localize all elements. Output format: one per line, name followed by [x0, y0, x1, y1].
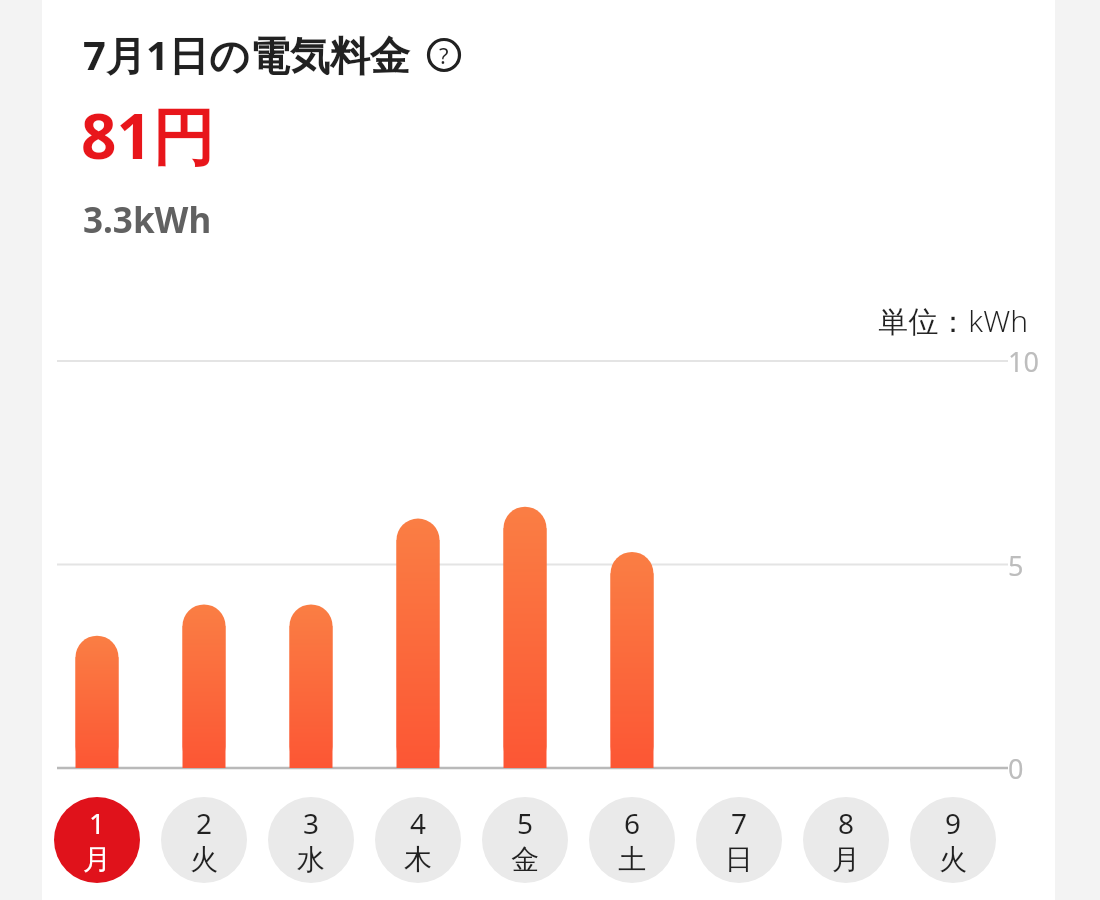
staticText: 10	[1008, 343, 1039, 380]
staticText: 土	[618, 842, 646, 877]
button[interactable]: ヘルプ	[424, 35, 464, 75]
staticText: 0	[1008, 750, 1024, 787]
button[interactable]: 3	[268, 797, 354, 883]
staticText: 単位：kWh	[728, 300, 1028, 341]
staticText: 3.3kWh	[83, 196, 212, 244]
staticText: 5	[1008, 547, 1024, 584]
staticText: 9	[945, 804, 962, 842]
button[interactable]: 5	[482, 797, 568, 883]
staticText: 金	[511, 842, 539, 877]
button[interactable]: 2	[161, 797, 247, 883]
staticText: 火	[190, 842, 218, 877]
staticText: 7月1日の電気料金	[83, 27, 410, 82]
staticText: 日	[725, 842, 753, 877]
staticText: 81円	[81, 93, 214, 178]
staticText: 月	[83, 842, 111, 877]
button[interactable]: 9	[910, 797, 996, 883]
button[interactable]: 8	[803, 797, 889, 883]
button[interactable]: 6	[589, 797, 675, 883]
staticText: 4	[410, 804, 427, 842]
staticText: 6	[624, 804, 641, 842]
staticText: 1	[89, 804, 106, 842]
staticText: 月	[832, 842, 860, 877]
button[interactable]: 1	[54, 797, 140, 883]
staticText: 水	[297, 842, 325, 877]
staticText: 7	[731, 804, 748, 842]
button[interactable]: 4	[375, 797, 461, 883]
staticText: 3	[303, 804, 320, 842]
staticText: 2	[196, 804, 213, 842]
staticText: 木	[404, 842, 432, 877]
button[interactable]: 7	[696, 797, 782, 883]
staticText: 5	[517, 804, 534, 842]
staticText: 8	[838, 804, 855, 842]
staticText: ?	[439, 40, 449, 70]
staticText: 火	[939, 842, 967, 877]
